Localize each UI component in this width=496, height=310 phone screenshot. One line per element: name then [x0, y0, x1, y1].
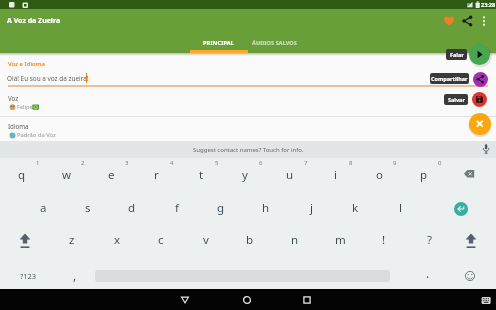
staticText: k: [352, 200, 359, 216]
staticText: 0: [438, 159, 442, 167]
staticText: q: [18, 167, 26, 183]
staticText: PRINCIPAL: [203, 39, 235, 46]
staticText: i: [334, 167, 337, 183]
button[interactable]: [477, 13, 491, 29]
staticText: ,: [73, 267, 77, 283]
button[interactable]: g: [207, 199, 235, 217]
staticText: Compartilhar: [431, 75, 468, 82]
staticText: z: [69, 232, 75, 248]
button[interactable]: x: [103, 231, 131, 249]
button[interactable]: a: [29, 199, 57, 217]
staticText: Voz e Idioma: [8, 60, 45, 68]
staticText: b: [246, 232, 254, 248]
staticText: 23:28: [481, 1, 496, 8]
button[interactable]: [0, 90, 440, 116]
staticText: 7: [304, 159, 308, 167]
staticText: 9: [393, 159, 397, 167]
button[interactable]: e: [97, 166, 125, 184]
staticText: Voz: [8, 94, 19, 102]
button[interactable]: t: [187, 166, 215, 184]
staticText: r: [154, 167, 159, 183]
staticText: ÁUDIOS SALVOS: [252, 39, 297, 46]
staticText: x: [114, 232, 121, 248]
staticText: a: [40, 200, 47, 216]
button[interactable]: [454, 202, 468, 216]
button[interactable]: ,: [62, 266, 88, 284]
button[interactable]: s: [74, 199, 102, 217]
staticText: Falar: [450, 51, 464, 58]
button[interactable]: u: [276, 166, 304, 184]
button[interactable]: .: [415, 264, 441, 282]
staticText: j: [310, 200, 313, 216]
staticText: g: [217, 200, 225, 216]
staticText: p: [420, 167, 428, 183]
staticText: 4: [170, 159, 174, 167]
staticText: y: [242, 167, 248, 183]
staticText: 1: [36, 159, 40, 167]
button[interactable]: w: [53, 166, 81, 184]
button[interactable]: [0, 141, 496, 158]
staticText: c: [158, 232, 164, 248]
button[interactable]: l: [386, 199, 414, 217]
button[interactable]: v: [192, 231, 220, 249]
button[interactable]: q: [8, 166, 36, 184]
button[interactable]: [460, 230, 482, 252]
button[interactable]: PRINCIPAL: [190, 36, 248, 48]
staticText: m: [335, 232, 346, 248]
staticText: v: [203, 232, 209, 248]
button[interactable]: d: [118, 199, 146, 217]
button[interactable]: r: [142, 166, 170, 184]
button[interactable]: ÁUDIOS SALVOS: [246, 36, 302, 48]
staticText: Idioma: [8, 122, 29, 130]
button[interactable]: f: [163, 199, 191, 217]
button[interactable]: [441, 13, 457, 29]
staticText: ?123: [20, 271, 37, 281]
staticText: o: [376, 167, 383, 183]
button[interactable]: [459, 13, 475, 29]
button[interactable]: [472, 92, 487, 107]
button[interactable]: i: [321, 166, 349, 184]
button[interactable]: n: [281, 231, 309, 249]
button[interactable]: Salvar: [444, 94, 468, 105]
button[interactable]: m: [326, 231, 354, 249]
staticText: n: [291, 232, 299, 248]
button[interactable]: [0, 117, 440, 141]
staticText: ?: [427, 232, 432, 248]
button[interactable]: [461, 267, 479, 285]
staticText: Suggest contact names? Touch for info.: [193, 146, 304, 154]
staticText: w: [62, 167, 72, 183]
button[interactable]: [469, 113, 491, 135]
button[interactable]: [473, 72, 488, 87]
staticText: Olá! Eu sou a voz da zueira!: [7, 74, 89, 83]
staticText: f: [175, 200, 179, 216]
staticText: 8: [349, 159, 353, 167]
button[interactable]: Compartilhar: [430, 73, 469, 84]
button[interactable]: [479, 141, 493, 157]
staticText: d: [128, 200, 136, 216]
button[interactable]: z: [58, 231, 86, 249]
button[interactable]: [239, 292, 255, 308]
button[interactable]: [299, 292, 315, 308]
button[interactable]: h: [252, 199, 280, 217]
button[interactable]: y: [231, 166, 259, 184]
staticText: Salvar: [448, 96, 465, 103]
button[interactable]: b: [236, 231, 264, 249]
staticText: !: [382, 232, 386, 248]
button[interactable]: [459, 164, 483, 184]
button[interactable]: o: [365, 166, 393, 184]
staticText: e: [108, 167, 115, 183]
button[interactable]: [469, 44, 490, 65]
button[interactable]: [478, 294, 494, 308]
button[interactable]: [14, 230, 36, 252]
button[interactable]: k: [341, 199, 369, 217]
button[interactable]: c: [147, 231, 175, 249]
button[interactable]: j: [297, 199, 325, 217]
staticText: s: [85, 200, 91, 216]
button[interactable]: ?123: [14, 268, 42, 284]
button[interactable]: ?: [415, 231, 443, 249]
button[interactable]: !: [370, 231, 398, 249]
button[interactable]: p: [410, 166, 438, 184]
button[interactable]: [177, 292, 193, 308]
button[interactable]: Falar: [446, 49, 467, 60]
